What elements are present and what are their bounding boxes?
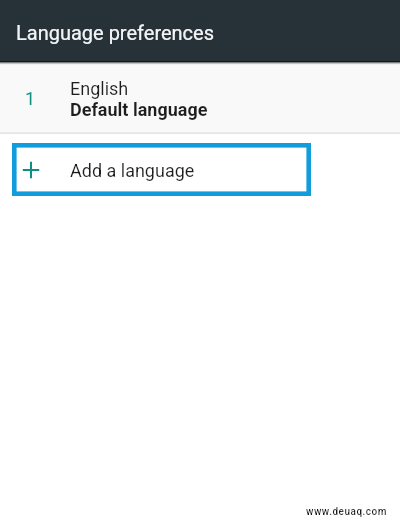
button[interactable]: Add a language	[0, 143, 311, 196]
button[interactable]: 1	[0, 61, 400, 132]
staticText: Default language	[70, 99, 208, 120]
staticText: Language preferences	[16, 21, 215, 44]
other: Add a language	[21, 160, 41, 180]
staticText: Add a language	[70, 160, 195, 181]
staticText: www.deuaq.com	[306, 506, 387, 518]
staticText: English	[70, 78, 129, 99]
staticText: 1	[25, 88, 36, 109]
